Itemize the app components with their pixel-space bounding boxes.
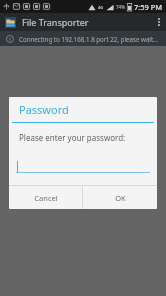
button[interactable]: OK: [83, 186, 157, 209]
staticText: File Transporter: [22, 16, 89, 28]
staticText: Please enter your password:: [19, 132, 126, 143]
button[interactable]: Cancel: [9, 186, 82, 209]
staticText: Password: [19, 102, 69, 117]
staticText: 74%: [116, 4, 125, 10]
button[interactable]: Password input: [16, 159, 150, 173]
button[interactable]: More options: [152, 13, 166, 31]
staticText: Connecting to 192.168.1.8 port 22, pleas…: [19, 35, 159, 43]
staticText: 4G: [98, 5, 104, 10]
staticText: 7:59 PM: [134, 2, 163, 12]
staticText: OK: [115, 193, 126, 203]
staticText: Cancel: [34, 193, 58, 203]
